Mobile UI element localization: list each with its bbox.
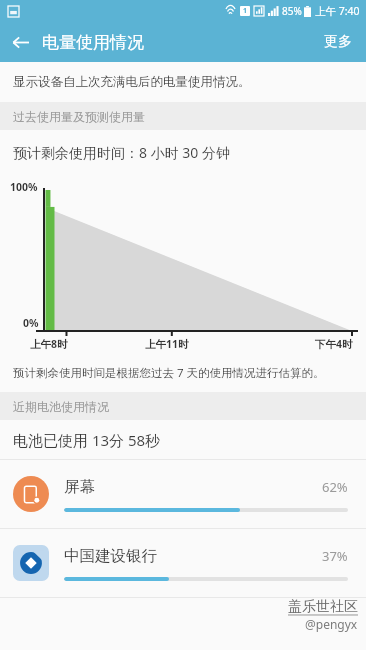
button[interactable]: 屏幕	[0, 460, 366, 528]
staticText: 过去使用量及预测使用量	[13, 109, 145, 124]
staticText: 上午11时	[145, 337, 189, 351]
staticText: 近期电池使用情况	[13, 399, 109, 414]
staticText: 37%	[322, 547, 348, 565]
staticText: 100%	[10, 180, 38, 194]
staticText: 盖乐世社区	[288, 598, 358, 616]
staticText: 上午8时	[30, 337, 68, 351]
staticText: 屏幕	[64, 477, 95, 497]
staticText: 0%	[23, 316, 39, 330]
staticText: 显示设备自上次充满电后的电量使用情况。	[13, 74, 251, 90]
button[interactable]: Back	[0, 22, 40, 62]
staticText: 预计剩余使用时间：8 小时 30 分钟	[13, 143, 230, 162]
staticText: @pengyx	[305, 616, 358, 632]
staticText: 中国建设银行	[64, 546, 157, 566]
staticText: 电量使用情况	[42, 32, 144, 53]
button[interactable]: 中国建设银行	[0, 529, 366, 597]
button[interactable]: 更多	[310, 25, 366, 59]
staticText: 上午 7:40	[315, 4, 360, 18]
staticText: 预计剩余使用时间是根据您过去 7 天的使用情况进行估算的。	[13, 365, 325, 381]
staticText: 62%	[322, 478, 348, 496]
staticText: 1	[243, 6, 248, 16]
staticText: 85%	[282, 4, 302, 18]
staticText: 电池已使用 13分 58秒	[13, 430, 161, 450]
staticText: 下午4时	[315, 337, 353, 351]
staticText: 更多	[324, 33, 352, 51]
